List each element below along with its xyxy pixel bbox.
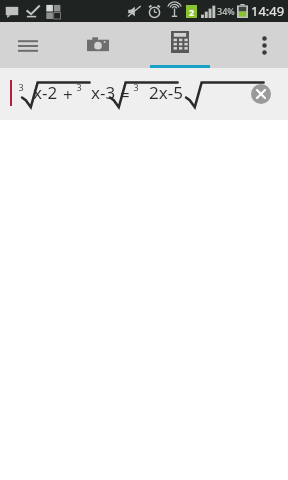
staticText: x-3 xyxy=(91,81,116,104)
button[interactable]: Clear xyxy=(244,77,278,111)
button[interactable]: Camera xyxy=(70,22,126,68)
staticText: 34% xyxy=(217,5,235,17)
staticText: 3 xyxy=(133,81,139,93)
staticText: 2x-5 xyxy=(149,81,183,104)
staticText: + xyxy=(63,83,73,106)
staticText: 3 xyxy=(18,81,24,93)
staticText: 14:49 xyxy=(251,2,285,20)
staticText: x-2 xyxy=(33,81,58,104)
staticText: 2 xyxy=(189,6,195,18)
staticText: 3 xyxy=(76,81,82,93)
button[interactable]: More options xyxy=(244,25,284,65)
button[interactable]: Calculator xyxy=(150,22,210,68)
button[interactable]: Menu xyxy=(6,23,50,67)
staticText: = xyxy=(120,83,130,106)
